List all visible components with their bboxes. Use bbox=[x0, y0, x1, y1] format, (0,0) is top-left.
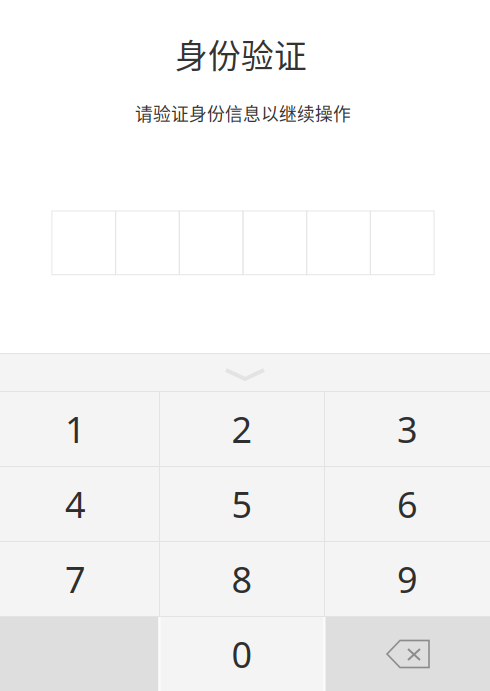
staticText: 身份验证 bbox=[175, 30, 307, 77]
button[interactable]: 2 bbox=[160, 392, 324, 466]
button[interactable]: 8 bbox=[160, 542, 324, 616]
staticText: 8 bbox=[231, 555, 252, 603]
button[interactable]: 0 bbox=[160, 617, 323, 691]
staticText: 请验证身份信息以继续操作 bbox=[135, 100, 351, 126]
button[interactable]: 5 bbox=[160, 467, 324, 541]
staticText: 6 bbox=[397, 480, 418, 528]
button[interactable]: 4 bbox=[0, 467, 159, 541]
staticText: 0 bbox=[231, 630, 252, 678]
button[interactable]: 6 bbox=[325, 467, 490, 541]
staticText: 4 bbox=[65, 480, 86, 528]
button[interactable]: 1 bbox=[0, 392, 159, 466]
button[interactable]: 9 bbox=[325, 542, 490, 616]
button[interactable]: 7 bbox=[0, 542, 159, 616]
staticText: 2 bbox=[231, 405, 252, 453]
button[interactable]: 3 bbox=[325, 392, 490, 466]
staticText: 7 bbox=[65, 555, 86, 603]
staticText: 5 bbox=[231, 480, 252, 528]
staticText: 1 bbox=[65, 405, 86, 453]
staticText: 3 bbox=[397, 405, 418, 453]
staticText: 9 bbox=[397, 555, 418, 603]
button[interactable]: Delete bbox=[325, 617, 490, 691]
